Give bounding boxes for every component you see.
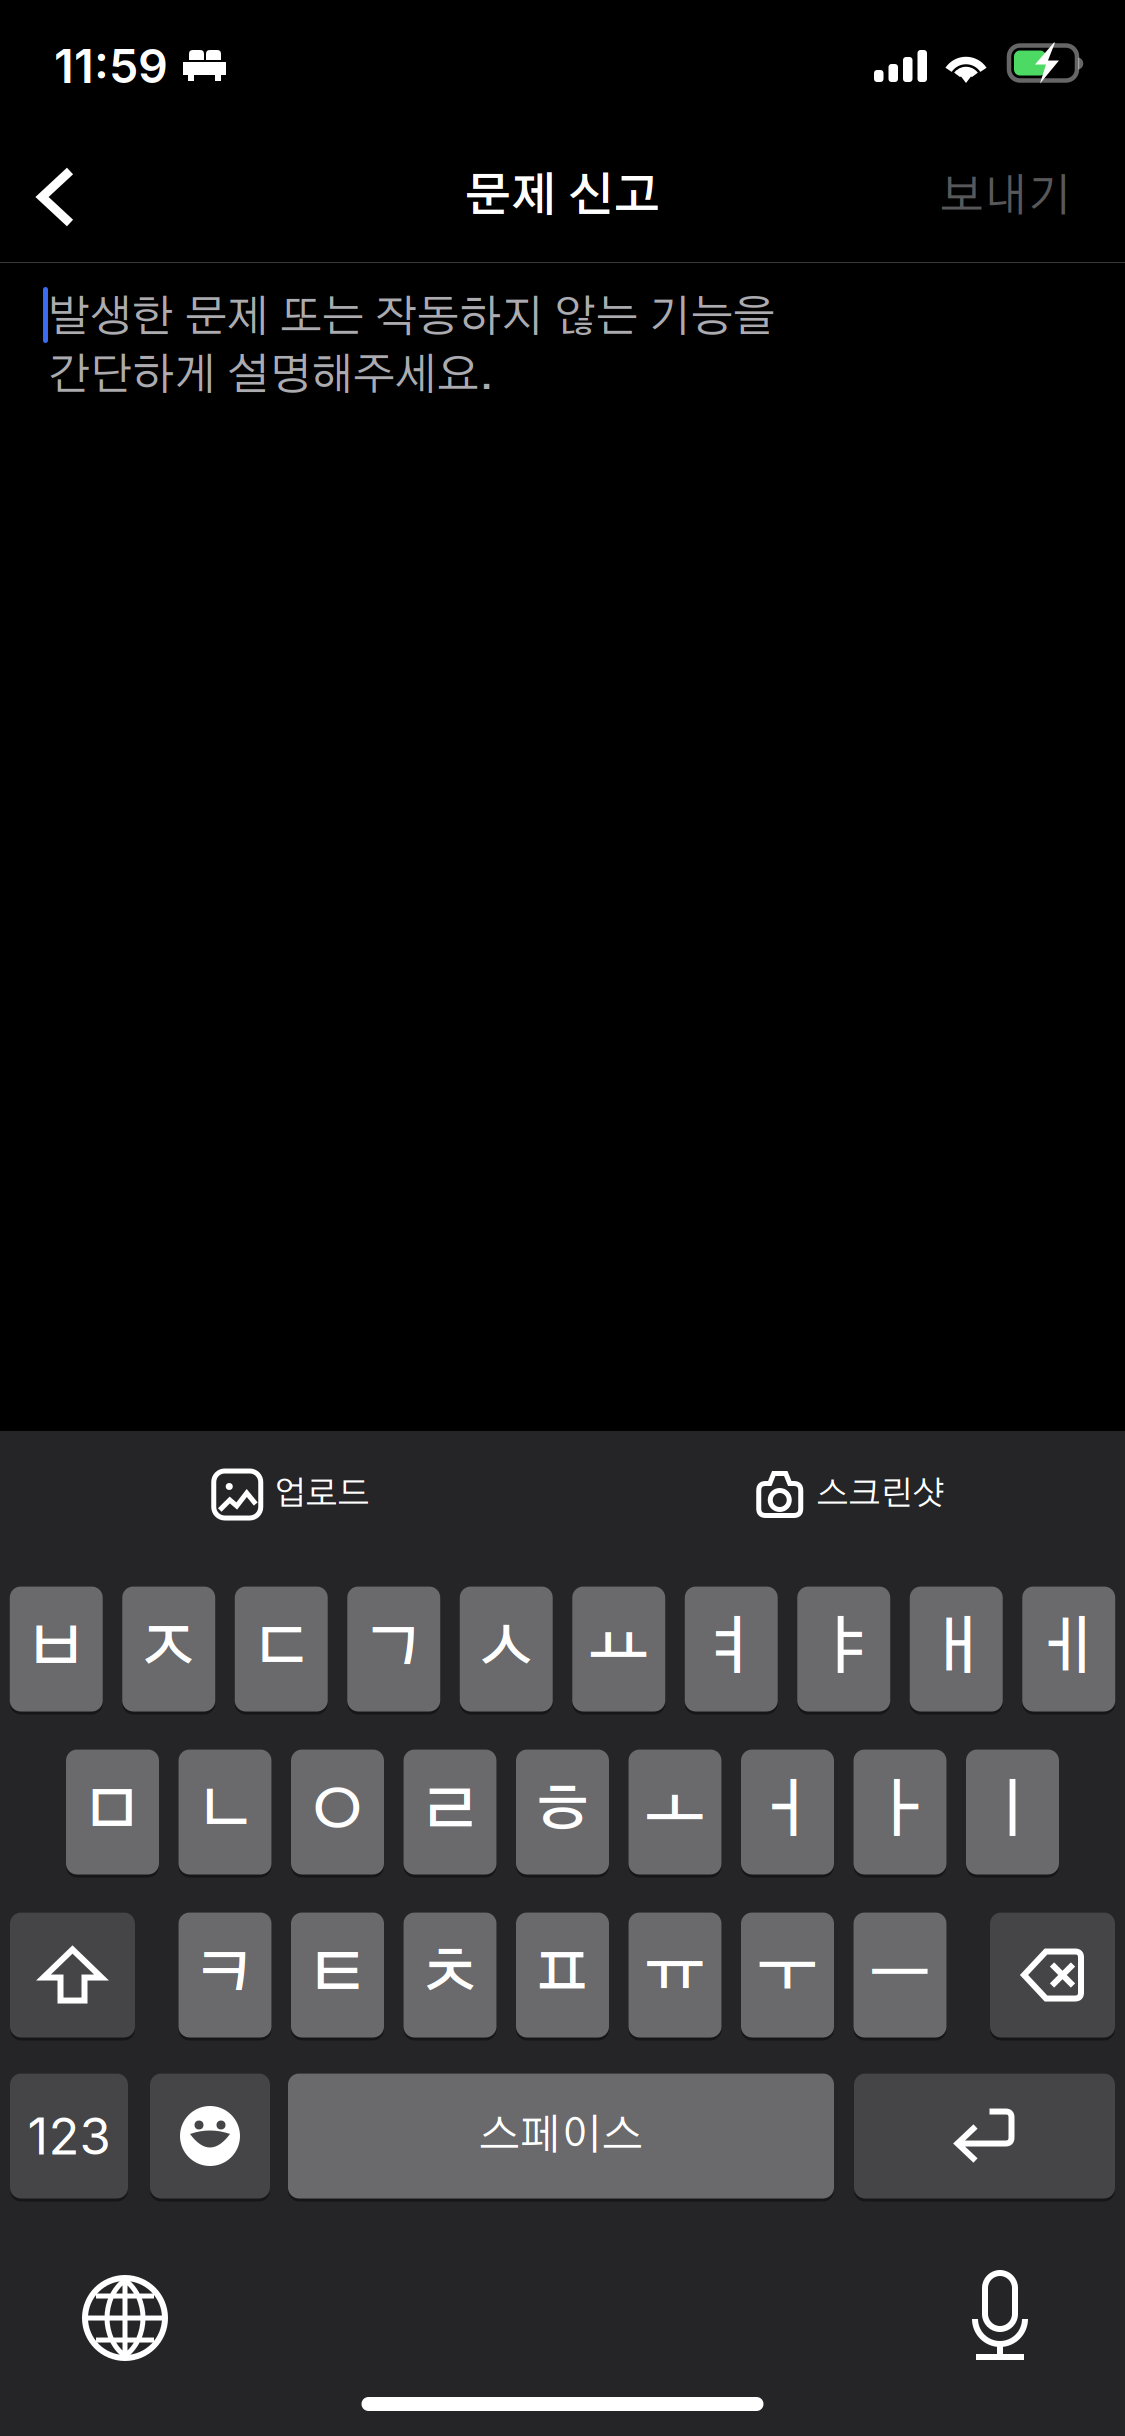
staticText: 업로드 [274,1478,370,1511]
button[interactable] [150,2072,270,2200]
staticText: ㅋ [193,1943,257,2007]
button[interactable]: ㅜ [741,1911,834,2039]
button[interactable]: ㅏ [853,1748,946,1876]
staticText: 문제 신고 [465,174,660,220]
staticText: ㅊ [418,1943,482,2007]
staticText: ㅣ [980,1780,1044,1844]
staticText: ㅡ [868,1943,932,2007]
staticText: 스크린샷 [817,1478,945,1511]
button[interactable]: ㅑ [797,1585,890,1713]
staticText: ㅎ [530,1780,594,1844]
staticText: ㅠ [643,1943,707,2007]
staticText: ㅑ [812,1617,876,1681]
staticText: 간단하게 설명해주세요. [48,354,494,398]
button[interactable] [10,1911,135,2039]
staticText: ㅓ [755,1780,819,1844]
staticText: 123 [27,2105,110,2167]
staticText: ㅐ [924,1617,988,1681]
button[interactable]: ㅊ [403,1911,496,2039]
button[interactable]: ㅡ [853,1911,946,2039]
button[interactable]: 스페이스 [288,2072,834,2200]
button[interactable]: ㅋ [178,1911,271,2039]
button[interactable]: ㅣ [966,1748,1059,1876]
staticText: ㄷ [249,1617,313,1681]
button[interactable]: ㅁ [66,1748,159,1876]
button[interactable]: ㅌ [291,1911,384,2039]
staticText: 스페이스 [479,2115,643,2157]
button[interactable]: 스크린샷 [562,1431,1125,1558]
button[interactable] [990,1911,1115,2039]
button[interactable]: ㄹ [403,1748,496,1876]
button[interactable]: 보내기 [940,132,1125,262]
staticText: ㅔ [1037,1617,1101,1681]
button[interactable]: ㄴ [178,1748,271,1876]
button[interactable]: ㅗ [628,1748,721,1876]
staticText: ㅏ [868,1780,932,1844]
button[interactable]: ㅕ [685,1585,778,1713]
staticText: ㅁ [80,1780,144,1844]
button[interactable]: Back [0,132,112,262]
staticText: ㅜ [755,1943,819,2007]
button[interactable] [854,2072,1115,2200]
staticText: ㄴ [193,1780,257,1844]
button[interactable]: 업로드 [0,1431,562,1558]
button[interactable]: ㅔ [1022,1585,1115,1713]
button[interactable]: ㅈ [122,1585,215,1713]
staticText: ㅈ [137,1617,201,1681]
staticText: ㅛ [587,1617,651,1681]
staticText: 보내기 [940,174,1072,220]
button[interactable]: ㄷ [235,1585,328,1713]
button[interactable]: 123 [10,2072,128,2200]
staticText: ㅗ [643,1780,707,1844]
staticText: ㅅ [474,1617,538,1681]
button[interactable]: ㅅ [460,1585,553,1713]
staticText: 11:59 [54,38,168,94]
button[interactable]: ㅇ [291,1748,384,1876]
staticText: ㄹ [418,1780,482,1844]
button[interactable]: ㅂ [10,1585,103,1713]
staticText: 발생한 문제 또는 작동하지 않는 기능을 [48,296,775,340]
button[interactable]: ㅎ [516,1748,609,1876]
button[interactable]: Next keyboard [70,2268,180,2368]
button[interactable]: ㅛ [572,1585,665,1713]
staticText: ㅍ [530,1943,594,2007]
staticText: ㅇ [305,1780,369,1844]
button[interactable]: ㅠ [628,1911,721,2039]
button[interactable]: Dictation [945,2268,1055,2368]
staticText: ㄱ [362,1617,426,1681]
staticText: ㅕ [699,1617,763,1681]
staticText: ㅌ [305,1943,369,2007]
button[interactable]: ㄱ [347,1585,440,1713]
button[interactable]: ㅍ [516,1911,609,2039]
staticText: ㅂ [24,1617,88,1681]
button[interactable]: ㅐ [910,1585,1003,1713]
button[interactable]: ㅓ [741,1748,834,1876]
